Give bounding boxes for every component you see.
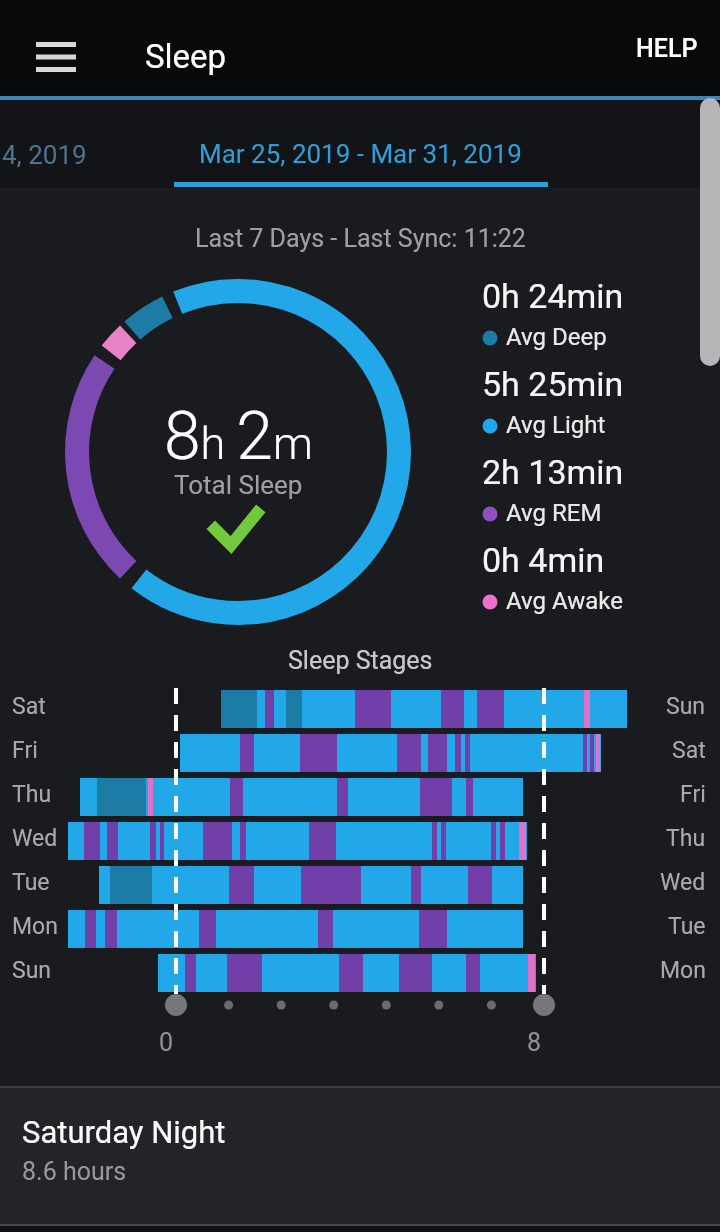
staticText: Sat [672,737,706,764]
button[interactable]: Saturday Night [0,1088,720,1224]
staticText: Sleep [145,37,227,76]
button[interactable] [24,30,88,84]
staticText: 8h 2m [164,398,313,475]
staticText: Avg Awake [506,587,623,615]
staticText: Sat [12,693,46,720]
staticText: 4, 2019 [2,140,87,170]
staticText: 5h 25min [482,364,624,404]
staticText: 0h 4min [482,540,605,580]
staticText: Sun [666,693,706,720]
staticText: Last 7 Days - Last Sync: 11:22 [195,224,526,253]
staticText: Fri [12,737,38,764]
staticText: 2h 13min [482,452,624,492]
staticText: Mon [12,913,58,940]
staticText: Wed [660,869,706,896]
staticText: Avg Deep [506,323,607,351]
staticText: Avg REM [506,499,602,527]
button[interactable]: 4, 2019 [0,100,100,188]
staticText: Total Sleep [174,470,303,500]
button[interactable] [522,983,566,1027]
staticText: Saturday Night [22,1114,226,1150]
staticText: 0h 24min [482,276,624,316]
staticText: Avg Light [506,411,606,439]
staticText: Fri [680,781,706,808]
staticText: Tue [668,913,706,940]
staticText: 8.6 hours [22,1157,127,1186]
staticText: Wed [12,825,58,852]
staticText: 0 [159,1028,174,1057]
button[interactable]: Mar 25, 2019 - Mar 31, 2019 [199,139,522,169]
staticText: Thu [666,825,706,852]
staticText: HELP [636,34,698,63]
button[interactable] [154,983,198,1027]
staticText: 8 [527,1028,542,1057]
staticText: Mar 25, 2019 - Mar 31, 2019 [199,139,522,169]
button[interactable]: HELP [636,34,698,63]
staticText: Tue [12,869,50,896]
staticText: Thu [12,781,52,808]
staticText: Sun [12,957,52,984]
staticText: Sleep Stages [288,646,433,675]
staticText: Mon [660,957,706,984]
